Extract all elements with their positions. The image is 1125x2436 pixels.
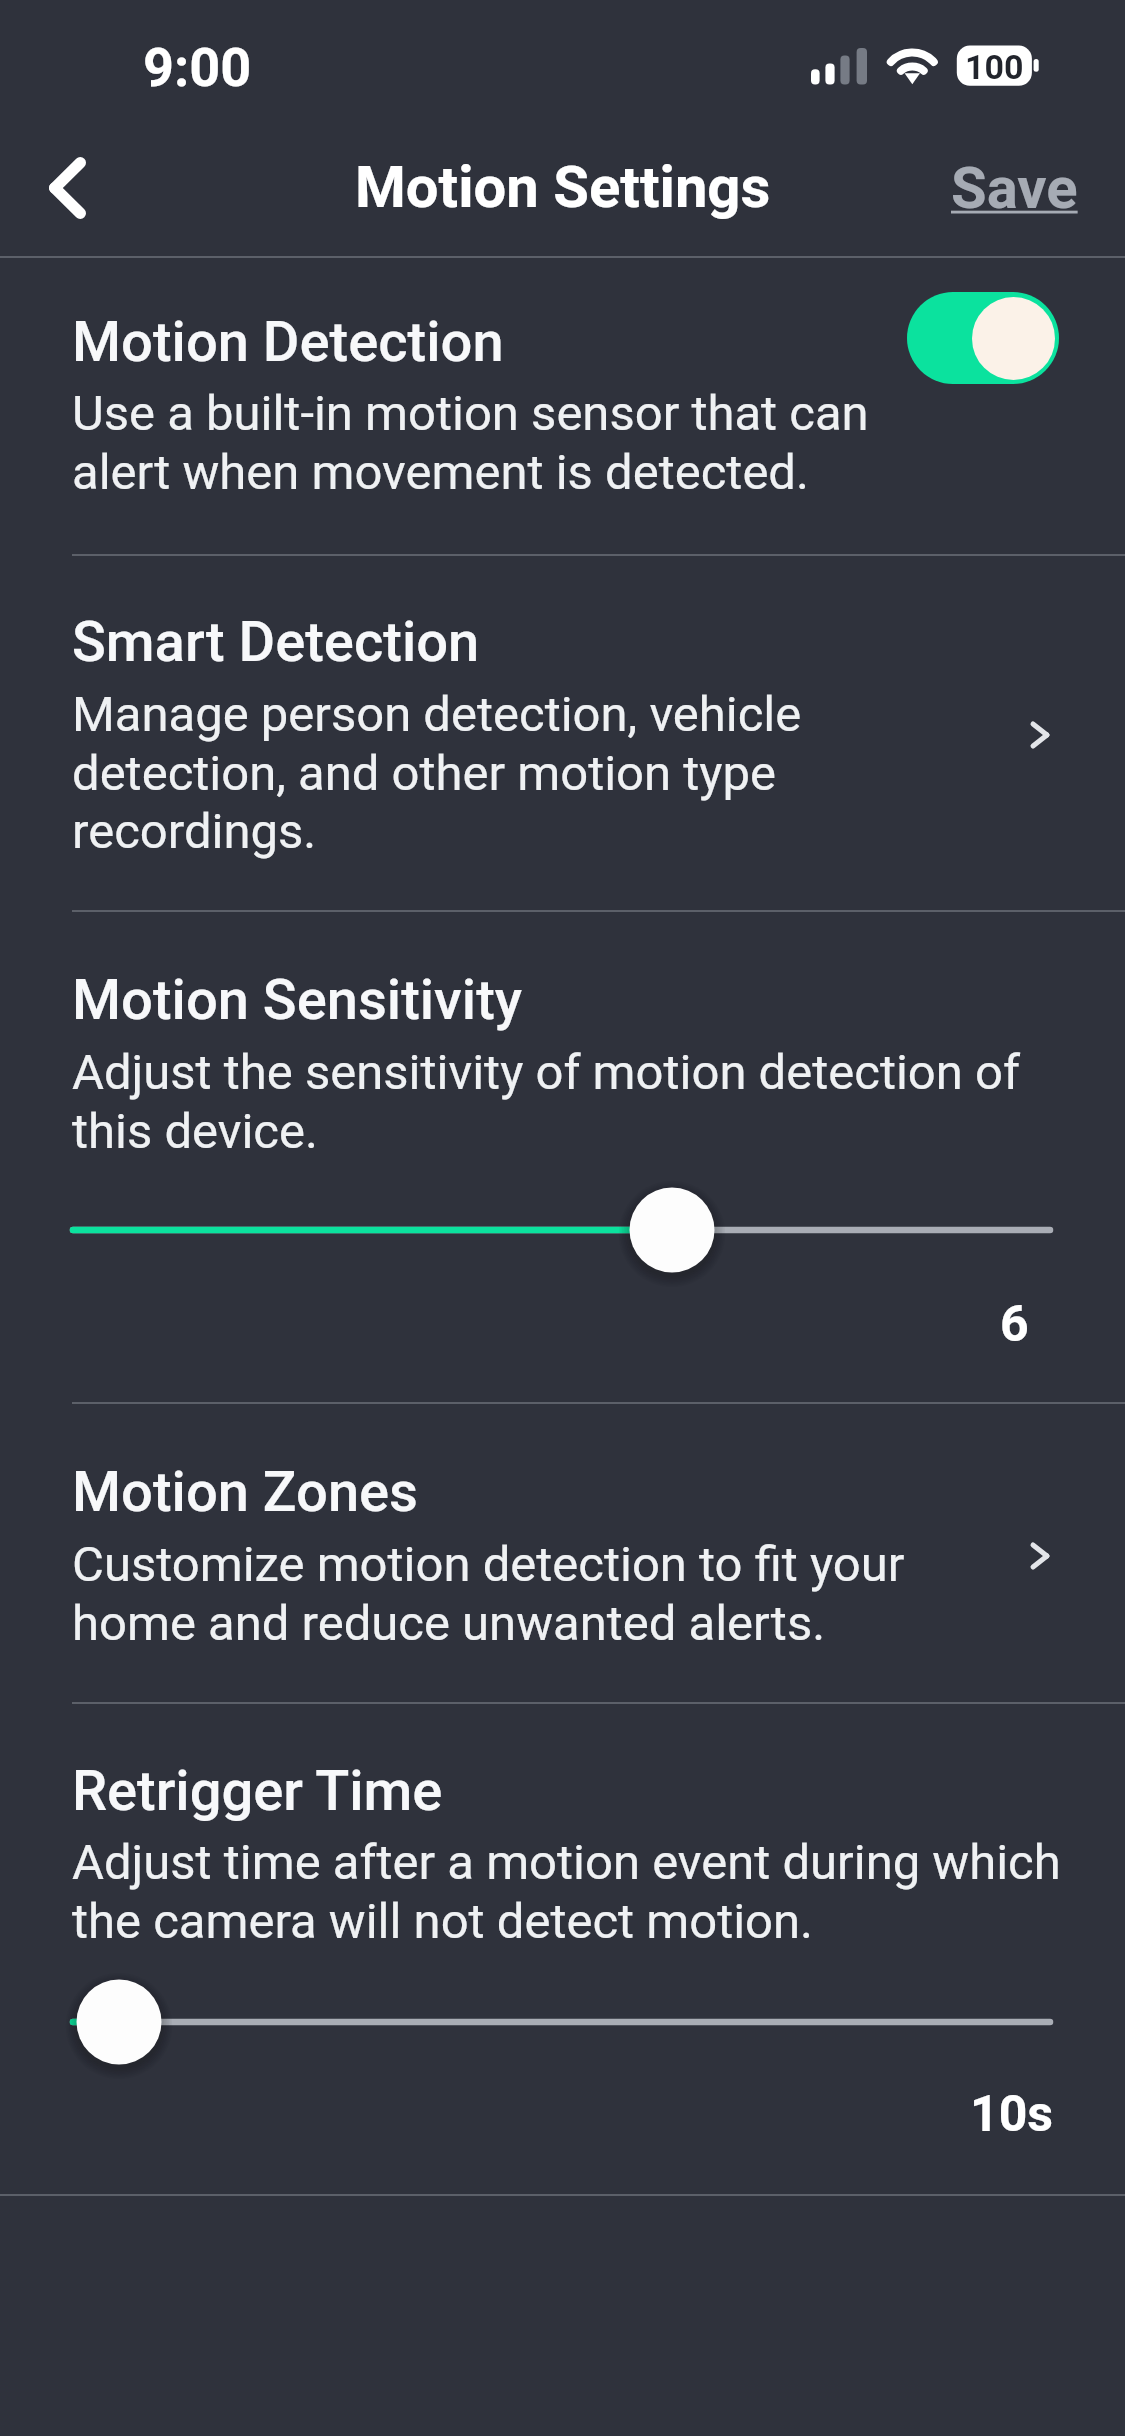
staticText: 9:00: [143, 36, 252, 99]
staticText: Smart Detection: [72, 609, 480, 675]
staticText: Use a built-in motion sensor that can al…: [72, 385, 869, 501]
staticText: Adjust time after a motion event during …: [72, 1834, 1061, 1950]
button[interactable]: Motion Zones: [0, 1404, 1125, 1702]
button[interactable]: Retrigger time slider: [0, 1963, 1125, 2083]
staticText: Retrigger Time: [72, 1758, 443, 1824]
staticText: Save: [951, 154, 1078, 222]
button[interactable]: Motion sensitivity slider: [0, 1171, 1125, 1291]
staticText: 6: [1000, 1295, 1029, 1354]
button[interactable]: Smart Detection: [0, 556, 1125, 910]
staticText: Motion Zones: [72, 1459, 419, 1525]
staticText: 100: [965, 47, 1024, 87]
staticText: Motion Sensitivity: [72, 967, 523, 1033]
button[interactable]: Motion Detection toggle: [907, 292, 1059, 384]
staticText: Motion Detection: [72, 309, 504, 375]
staticText: 10s: [970, 2085, 1054, 2144]
button[interactable]: Save: [921, 140, 1125, 236]
button[interactable]: Motion Detection: [0, 258, 1125, 554]
staticText: Motion Settings: [355, 153, 771, 221]
staticText: Customize motion detection to fit your h…: [72, 1536, 905, 1652]
button[interactable]: Back: [9, 130, 125, 246]
staticText: Adjust the sensitivity of motion detecti…: [72, 1044, 1020, 1160]
staticText: Manage person detection, vehicle detecti…: [72, 686, 802, 860]
